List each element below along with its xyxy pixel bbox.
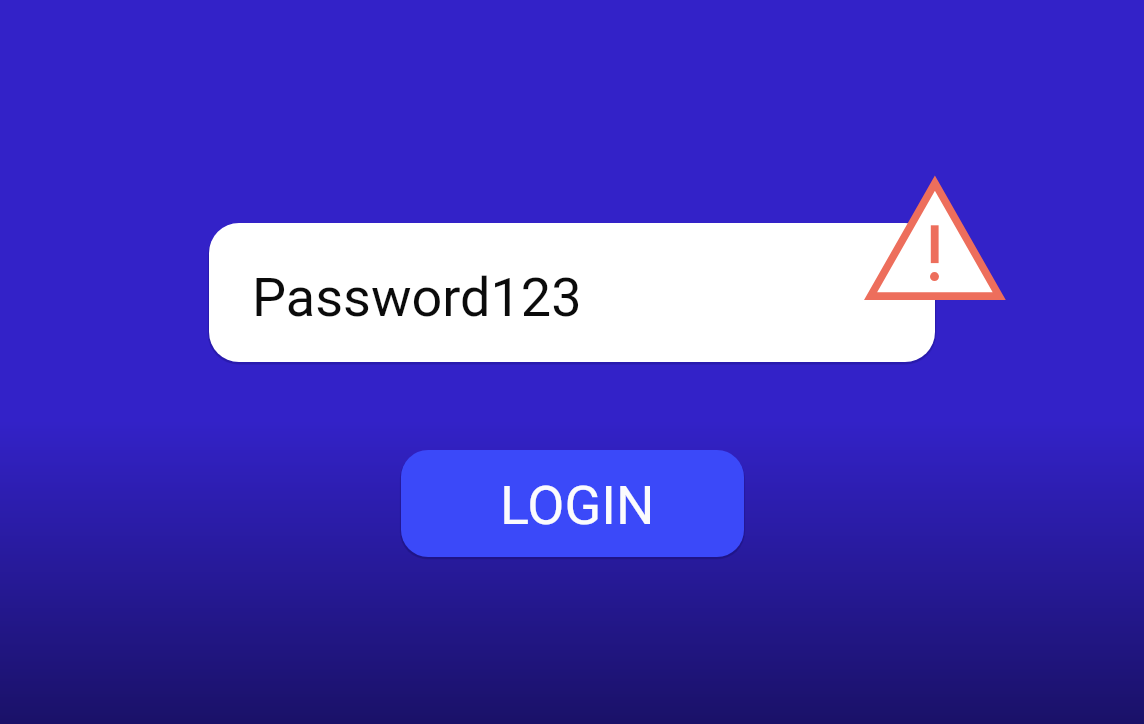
button[interactable]: Password field: [209, 223, 935, 362]
staticText: LOGIN: [500, 474, 655, 537]
other: Password warning: [856, 168, 1012, 308]
staticText: Password123: [252, 266, 582, 329]
button[interactable]: LOGIN: [401, 450, 744, 557]
